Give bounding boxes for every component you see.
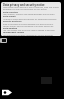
staticText: whenever you use this application on you…: [3, 8, 48, 11]
staticText: No data is shared with third parties for…: [3, 18, 57, 21]
staticText: Data deletion: [3, 27, 18, 30]
staticText: Independent review: [3, 31, 24, 34]
staticText: Security practices: [3, 20, 22, 23]
staticText: You can request that all of your data is…: [3, 29, 55, 32]
staticText: Data collected: [3, 11, 18, 14]
staticText: Data is encrypted in transit between you…: [3, 23, 54, 26]
staticText: Your location, contacts and device ident…: [3, 13, 55, 16]
button[interactable]: Offers: [2, 88, 12, 97]
staticText: Data shared: [3, 15, 16, 18]
button[interactable]: Thumbnail: [0, 38, 7, 43]
staticText: This application has been reviewed for s…: [3, 34, 53, 36]
staticText: servers using a secure connection at all…: [3, 25, 54, 28]
staticText: Information about how your data is colle…: [3, 6, 59, 9]
staticText: Data privacy and security notice: [3, 3, 45, 7]
